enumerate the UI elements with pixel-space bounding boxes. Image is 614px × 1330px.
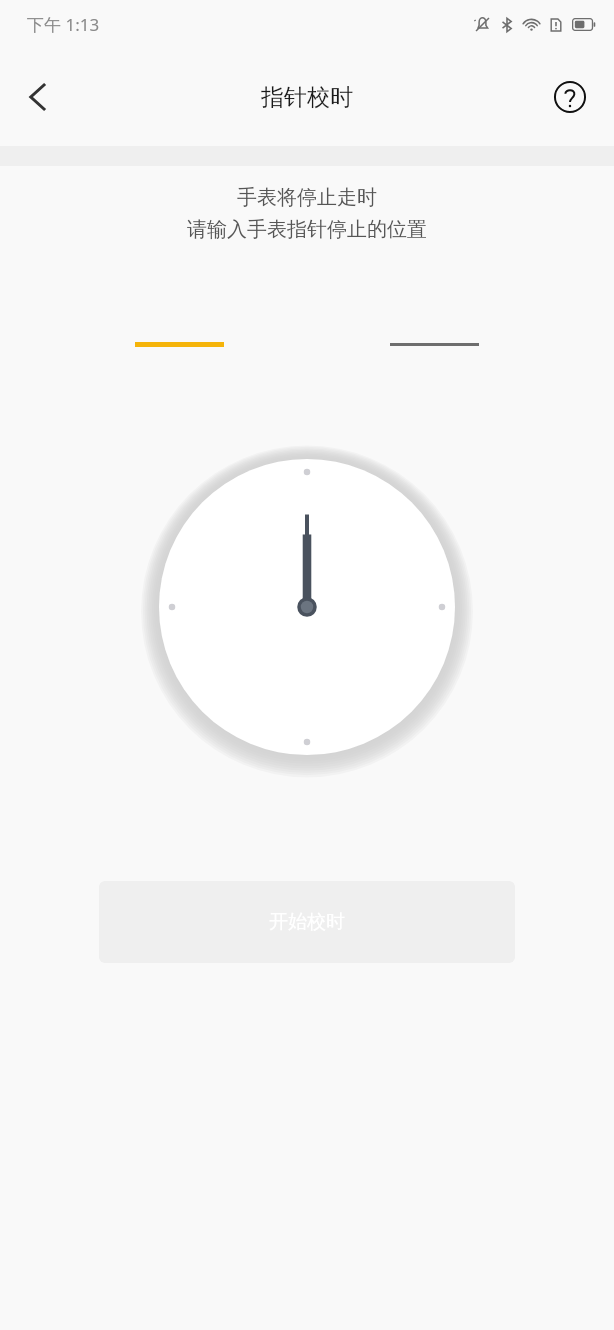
button[interactable]: Back <box>10 69 66 125</box>
staticText: 开始校时 <box>269 910 345 934</box>
staticText: 下午 1:13 <box>27 13 100 36</box>
button[interactable]: Help <box>544 71 596 123</box>
staticText: 请输入手表指针停止的位置 <box>187 217 427 242</box>
staticText: 指针校时 <box>261 83 353 112</box>
staticText: 手表将停止走时 <box>237 185 377 210</box>
